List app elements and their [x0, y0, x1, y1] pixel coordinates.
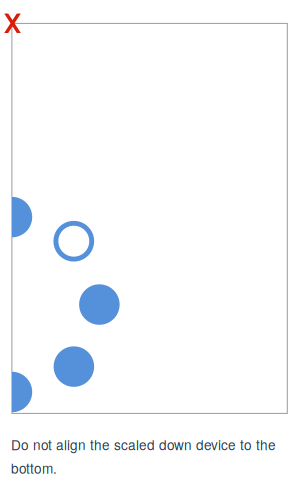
staticText: bottom.: [11, 458, 57, 478]
staticText: Do not align the scaled down device to t…: [11, 435, 276, 454]
